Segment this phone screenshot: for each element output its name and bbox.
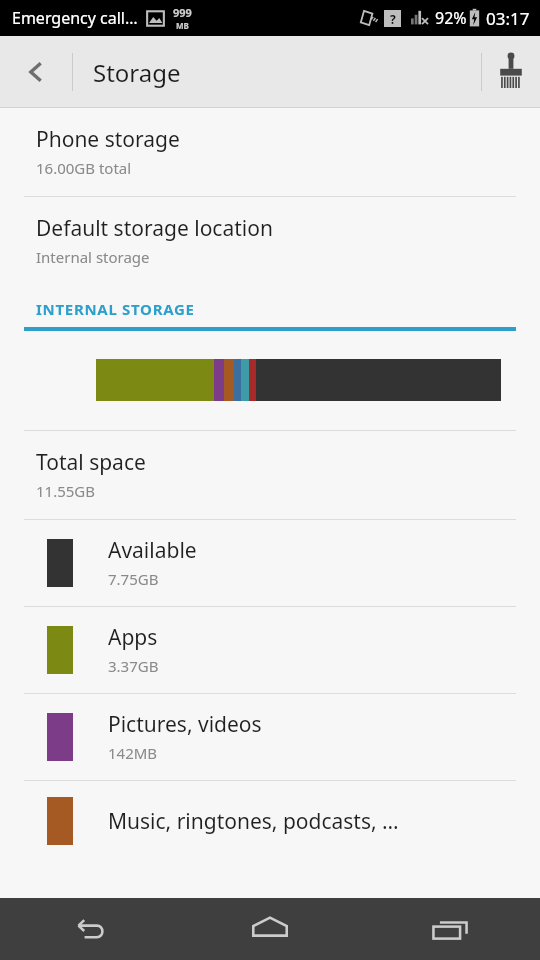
button[interactable]: Back [0, 898, 180, 960]
staticText: 7.75GB [108, 569, 159, 589]
staticText: Pictures, videos [108, 710, 262, 739]
staticText: Music, ringtones, podcasts, … [108, 807, 399, 836]
staticText: Apps [108, 623, 158, 652]
staticText: INTERNAL STORAGE [36, 299, 195, 319]
button[interactable]: Pictures, videos [0, 694, 540, 780]
staticText: Storage [93, 56, 181, 89]
staticText: 92% [435, 7, 467, 29]
staticText: Default storage location [36, 214, 273, 243]
button[interactable]: Music, ringtones, podcasts, … [0, 781, 540, 862]
button[interactable]: Clean up storage [482, 36, 540, 108]
button[interactable]: Total space [0, 431, 540, 519]
button[interactable]: Back [0, 36, 72, 108]
staticText: 3.37GB [108, 656, 159, 676]
staticText: ? [390, 11, 396, 27]
staticText: 16.00GB total [36, 158, 132, 178]
staticText: 03:17 [486, 7, 530, 30]
button[interactable]: Phone storage [0, 108, 540, 196]
button[interactable]: Default storage location [0, 197, 540, 285]
staticText: Internal storage [36, 247, 150, 267]
button[interactable]: Apps [0, 607, 540, 693]
button[interactable]: Home [180, 898, 360, 960]
button[interactable]: Available [0, 520, 540, 606]
staticText: Phone storage [36, 125, 180, 154]
button[interactable]: INTERNAL STORAGE [0, 299, 540, 331]
staticText: 142MB [108, 743, 158, 763]
staticText: MB [176, 20, 189, 31]
button[interactable]: Recent apps [360, 898, 540, 960]
staticText: Total space [36, 448, 146, 477]
staticText: 999 [173, 5, 192, 20]
staticText: Emergency call… [12, 7, 138, 29]
staticText: Available [108, 536, 197, 565]
staticText: 11.55GB [36, 481, 96, 501]
